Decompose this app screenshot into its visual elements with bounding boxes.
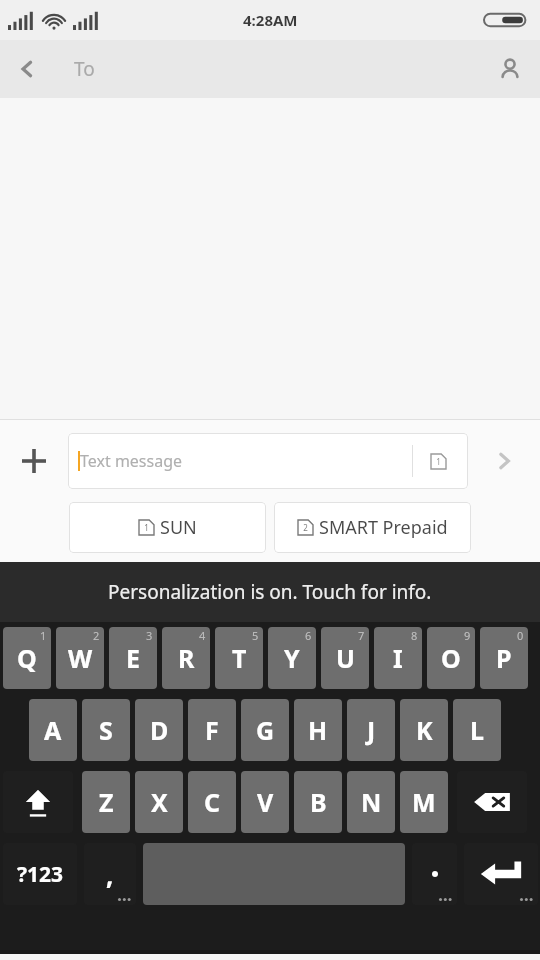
staticText: O	[441, 641, 461, 675]
button[interactable]: G	[241, 699, 289, 761]
button[interactable]: E	[109, 627, 157, 689]
staticText: 7	[358, 628, 365, 643]
button[interactable]: Text message	[68, 433, 468, 489]
button[interactable]: Enter	[464, 843, 538, 905]
button[interactable]: Personalization is on. Touch for info.	[0, 562, 540, 622]
staticText: Personalization is on. Touch for info.	[108, 579, 432, 605]
button[interactable]: Shift	[3, 771, 73, 833]
button[interactable]: S	[82, 699, 130, 761]
staticText: 1	[40, 628, 47, 643]
staticText: W	[68, 641, 93, 675]
button[interactable]: M	[400, 771, 448, 833]
button[interactable]: C	[188, 771, 236, 833]
button[interactable]: T	[215, 627, 263, 689]
staticText: C	[204, 785, 221, 819]
button[interactable]: F	[188, 699, 236, 761]
button[interactable]: W	[56, 627, 104, 689]
staticText: S	[99, 713, 113, 747]
button[interactable]: B	[294, 771, 342, 833]
button[interactable]: R	[162, 627, 210, 689]
staticText: 2	[93, 628, 100, 643]
button[interactable]: V	[241, 771, 289, 833]
button[interactable]: 1	[69, 502, 266, 553]
staticText: L	[470, 713, 484, 747]
staticText: 4	[199, 628, 206, 643]
button[interactable]: H	[294, 699, 342, 761]
button[interactable]: K	[400, 699, 448, 761]
button[interactable]: D	[135, 699, 183, 761]
staticText: 6	[305, 628, 312, 643]
button[interactable]: J	[347, 699, 395, 761]
staticText: K	[416, 713, 433, 747]
button[interactable]: Q	[3, 627, 51, 689]
button[interactable]: Back	[0, 40, 54, 98]
staticText: R	[178, 641, 195, 675]
button[interactable]: I	[374, 627, 422, 689]
button[interactable]: Y	[268, 627, 316, 689]
staticText: I	[393, 641, 403, 675]
staticText: 8	[411, 628, 418, 643]
button[interactable]: Add contact	[480, 40, 540, 98]
button[interactable]: To	[74, 40, 480, 98]
button[interactable]: N	[347, 771, 395, 833]
button[interactable]: P	[480, 627, 528, 689]
staticText: B	[310, 785, 327, 819]
staticText: V	[257, 785, 274, 819]
staticText: 9	[464, 628, 471, 643]
staticText: SMART Prepaid	[319, 515, 448, 540]
staticText: H	[308, 713, 328, 747]
staticText: ?123	[17, 860, 64, 889]
staticText: 4:28AM	[243, 10, 298, 30]
staticText: A	[44, 713, 62, 747]
staticText: To	[74, 56, 95, 82]
staticText: G	[256, 713, 275, 747]
staticText: J	[367, 713, 376, 747]
staticText: 2	[303, 522, 308, 533]
staticText: P	[496, 641, 512, 675]
button[interactable]: ?123	[3, 843, 77, 905]
staticText: E	[126, 641, 141, 675]
staticText: Z	[99, 785, 114, 819]
button[interactable]: Backspace	[457, 771, 527, 833]
button[interactable]: Send	[468, 420, 540, 502]
staticText: X	[151, 785, 168, 819]
button[interactable]: ,	[84, 843, 136, 905]
button[interactable]: 2	[274, 502, 471, 553]
staticText: U	[336, 641, 355, 675]
button[interactable]: O	[427, 627, 475, 689]
staticText: 0	[517, 628, 524, 643]
staticText: M	[412, 785, 436, 819]
staticText: 1	[436, 456, 441, 467]
staticText: ,	[106, 857, 114, 892]
button[interactable]	[412, 843, 457, 905]
staticText: SUN	[160, 515, 197, 540]
staticText: Text message	[80, 450, 183, 472]
staticText: Q	[17, 641, 37, 675]
button[interactable]: A	[29, 699, 77, 761]
button[interactable]: U	[321, 627, 369, 689]
staticText: 1	[144, 522, 149, 533]
button[interactable]: Z	[82, 771, 130, 833]
staticText: 3	[146, 628, 153, 643]
button[interactable]: Attach	[0, 420, 68, 502]
staticText: T	[232, 641, 247, 675]
staticText: 5	[252, 628, 259, 643]
button[interactable]: L	[453, 699, 501, 761]
staticText: N	[361, 785, 382, 819]
staticText: D	[150, 713, 169, 747]
staticText: Y	[284, 641, 300, 675]
button[interactable]: X	[135, 771, 183, 833]
staticText: F	[205, 713, 219, 747]
